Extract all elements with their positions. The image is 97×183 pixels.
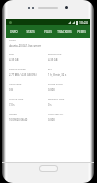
staticText: ETA [48, 68, 53, 71]
button[interactable]: STATS [22, 25, 39, 38]
button[interactable]: TRACKERS [56, 25, 73, 38]
button[interactable]: FILES [39, 25, 56, 38]
button[interactable]: Home [39, 165, 58, 172]
staticText: ADDED [9, 113, 17, 116]
staticText: 0 s [48, 103, 52, 107]
staticText: DOWNLOADED [9, 68, 26, 71]
staticText: 10:24 [79, 20, 88, 25]
staticText: NAME [9, 39, 16, 42]
staticText: FILES [44, 30, 52, 34]
button[interactable]: INFO [6, 25, 22, 38]
staticText: 4.35 GB [9, 58, 19, 62]
staticText: UPLOADED [9, 83, 22, 86]
staticText: 7.0 s [9, 103, 15, 107]
staticText: SEEDING TIME [48, 98, 65, 101]
staticText: 2.77 MB / 4.35 GB (0%) [9, 73, 37, 77]
staticText: STATS [26, 30, 35, 34]
staticText: 1 h, 8 min, 32 s [48, 73, 67, 77]
staticText: 0.000 [48, 88, 55, 92]
staticText: REMAINING [48, 53, 62, 56]
staticText: 4.35 GB [48, 58, 58, 62]
button[interactable]: PEERS [73, 25, 90, 38]
staticText: 0.000 [48, 118, 55, 122]
staticText: TRACKERS [57, 30, 72, 34]
staticText: INFO [10, 30, 18, 34]
staticText: SHARE RATIO [48, 83, 63, 86]
staticText: 0 B [9, 88, 13, 92]
staticText: ubuntu-20.04.1-live-server [9, 44, 42, 48]
staticText: 10/09/20 08:40 [9, 118, 28, 122]
staticText: SIZE [9, 53, 14, 56]
staticText: AVAILABILITY [48, 113, 64, 116]
staticText: PEERS [77, 30, 86, 34]
staticText: ACTIVE TIME [9, 98, 24, 101]
